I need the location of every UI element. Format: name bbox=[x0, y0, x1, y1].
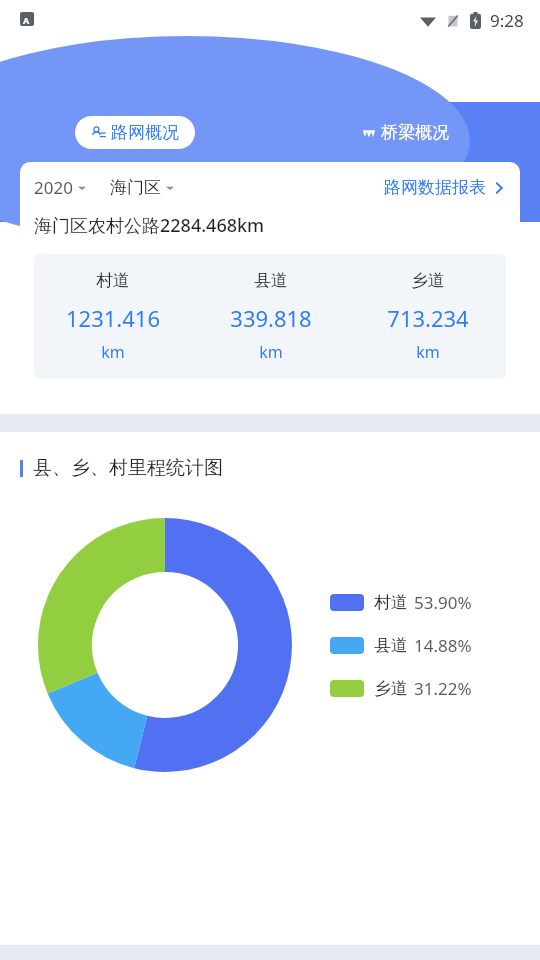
staticText: 桥梁概况 bbox=[381, 122, 449, 143]
button[interactable]: 海门区 bbox=[110, 177, 174, 198]
staticText: 县、乡、村里程统计图 bbox=[33, 456, 223, 480]
staticText: 713.234 bbox=[387, 303, 469, 333]
button[interactable]: Back bbox=[8, 47, 56, 95]
button[interactable]: 路网数据报表 bbox=[384, 177, 506, 198]
staticText: 路网概况 bbox=[111, 122, 179, 143]
staticText: A bbox=[23, 14, 30, 26]
staticText: 乡道 bbox=[411, 270, 445, 291]
button[interactable]: 路网概况 bbox=[75, 116, 195, 149]
staticText: km bbox=[416, 341, 440, 363]
staticText: 村道 bbox=[374, 592, 408, 613]
staticText: 339.818 bbox=[230, 303, 312, 333]
staticText: 2020 bbox=[34, 176, 73, 199]
staticText: km bbox=[259, 341, 283, 363]
staticText: 31.22% bbox=[414, 677, 472, 700]
staticText: 村道 bbox=[96, 270, 130, 291]
staticText: 9:28 bbox=[490, 9, 524, 32]
staticText: 县道 bbox=[254, 270, 288, 291]
staticText: km bbox=[101, 341, 125, 363]
staticText: 53.90% bbox=[414, 591, 472, 614]
staticText: 乡道 bbox=[374, 678, 408, 699]
button[interactable]: 桥梁概况 bbox=[346, 116, 465, 149]
staticText: 海门区农村公路2284.468km bbox=[34, 213, 265, 238]
staticText: 海门区 bbox=[110, 177, 161, 198]
button[interactable]: 2020 bbox=[34, 176, 86, 199]
staticText: 路网数据报表 bbox=[384, 177, 486, 198]
staticText: 县道 bbox=[374, 635, 408, 656]
staticText: 1231.416 bbox=[66, 303, 160, 333]
staticText: 14.88% bbox=[414, 634, 472, 657]
